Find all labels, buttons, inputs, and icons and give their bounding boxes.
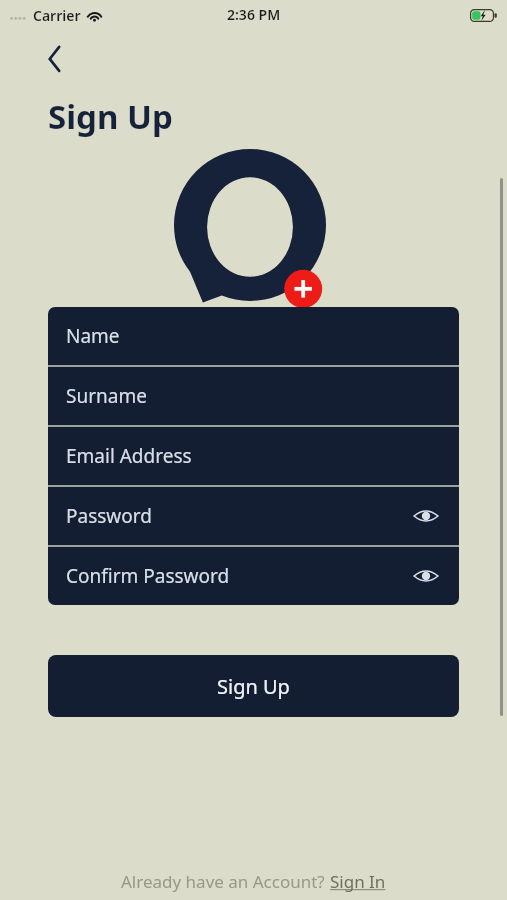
button[interactable]: Surname <box>48 367 459 425</box>
staticText: Confirm Password <box>66 563 411 589</box>
button[interactable]: Sign Up <box>48 655 459 717</box>
button[interactable]: Name <box>48 307 459 365</box>
button[interactable]: Email Address <box>48 427 459 485</box>
button[interactable]: Sign In <box>330 870 386 893</box>
staticText: Already have an Account? <box>121 870 330 893</box>
button[interactable]: Back <box>34 36 78 80</box>
staticText: Sign In <box>330 870 386 893</box>
button[interactable]: Password <box>48 487 459 545</box>
staticText: Email Address <box>66 443 441 469</box>
staticText: Carrier <box>33 6 81 25</box>
staticText: Password <box>66 503 411 529</box>
button[interactable]: Show password <box>411 561 441 591</box>
staticText: Sign Up <box>217 673 290 700</box>
button[interactable]: Show password <box>411 501 441 531</box>
staticText: Surname <box>66 383 441 409</box>
button[interactable]: Confirm Password <box>48 547 459 605</box>
staticText: 2:36 PM <box>227 5 281 24</box>
staticText: Sign Up <box>48 94 173 139</box>
staticText: Name <box>66 323 441 349</box>
